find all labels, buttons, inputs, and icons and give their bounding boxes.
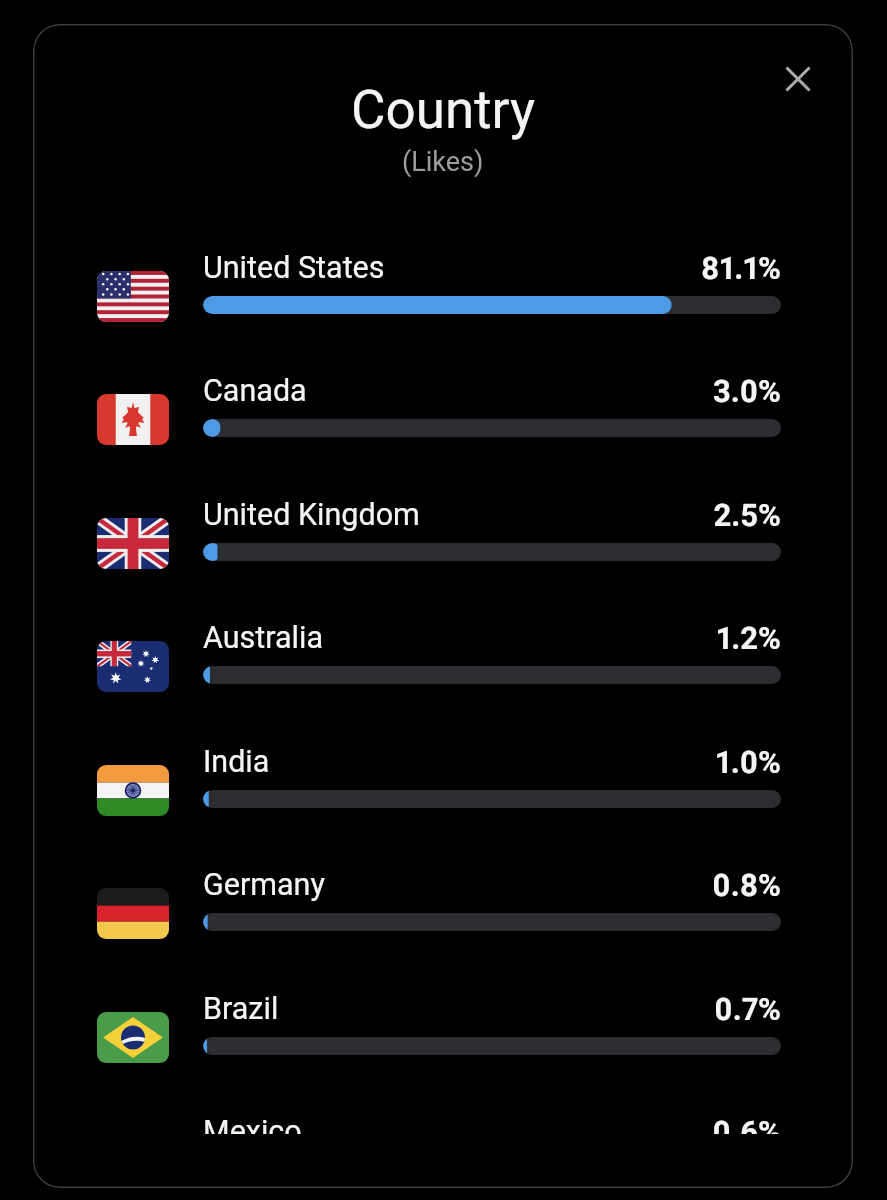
staticText: 2.5% <box>713 497 781 533</box>
staticText: India <box>203 744 715 780</box>
staticText: 0.6% <box>712 1114 781 1134</box>
staticText: United States <box>203 250 701 286</box>
staticText: 1.2% <box>716 620 781 656</box>
button[interactable]: United States 81.1% <box>64 238 789 350</box>
staticText: 1.0% <box>715 744 781 780</box>
staticText: United Kingdom <box>203 497 713 533</box>
button[interactable]: Australia 1.2% <box>64 608 789 720</box>
staticText: Canada <box>203 373 712 409</box>
staticText: 0.8% <box>712 867 781 903</box>
button[interactable]: Brazil 0.7% <box>64 979 789 1091</box>
staticText: Australia <box>203 620 716 656</box>
staticText: 3.0% <box>712 373 781 409</box>
staticText: Country <box>351 79 536 141</box>
button[interactable]: India 1.0% <box>64 732 789 844</box>
button[interactable]: Canada 3.0% <box>64 361 789 473</box>
staticText: Mexico <box>203 1114 712 1134</box>
button[interactable]: Close <box>770 51 826 107</box>
button[interactable]: United Kingdom 2.5% <box>64 485 789 597</box>
staticText: (Likes) <box>402 146 484 178</box>
button[interactable]: Germany 0.8% <box>64 855 789 967</box>
staticText: 81.1% <box>701 250 781 286</box>
staticText: 0.7% <box>714 991 781 1027</box>
staticText: Brazil <box>203 991 714 1027</box>
staticText: Germany <box>203 867 712 903</box>
button[interactable]: Mexico 0.6% <box>64 1102 789 1134</box>
